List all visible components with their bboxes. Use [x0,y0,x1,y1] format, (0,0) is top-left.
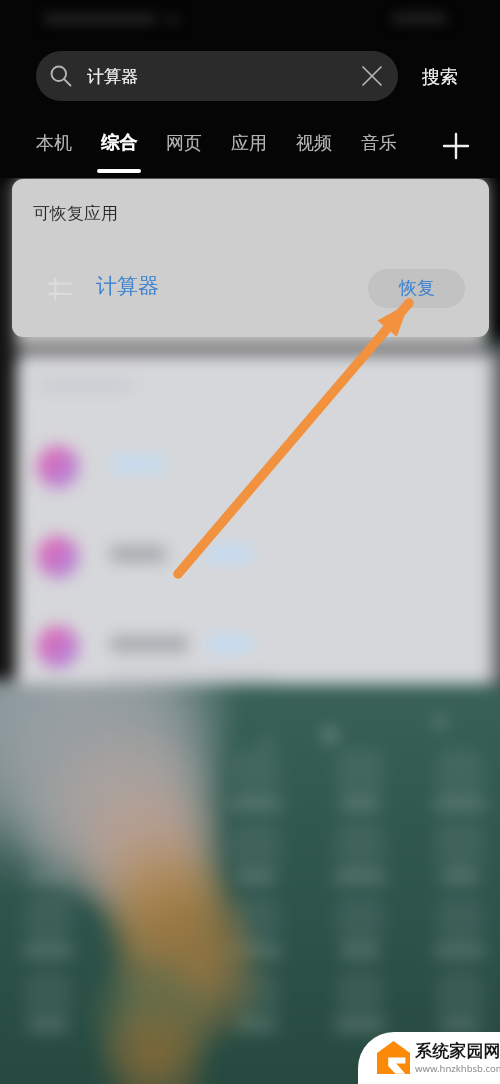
button[interactable]: 搜索 [414,59,466,96]
staticText: www.hnzkhbsb.com [415,1062,500,1075]
button[interactable]: 计算器 [12,255,489,323]
button[interactable]: 音乐 [352,124,406,178]
staticText: 综合 [101,132,137,155]
staticText: 系统家园网 [415,1041,500,1062]
staticText: 网页 [166,132,202,155]
staticText: 恢复 [399,277,435,300]
button[interactable]: 综合 [92,124,146,178]
staticText: 可恢复应用 [33,203,118,224]
button[interactable]: 网页 [157,124,211,178]
staticText: 音乐 [361,132,397,155]
staticText: 应用 [231,132,267,155]
staticText: 视频 [296,132,332,155]
button[interactable]: Clear query [352,56,392,96]
staticText: 计算器 [96,273,159,299]
button[interactable]: 视频 [287,124,341,178]
button[interactable]: 应用 [222,124,276,178]
staticText: 本机 [36,132,72,155]
button[interactable]: 计算器 [36,51,398,101]
staticText: 搜索 [422,66,458,89]
button[interactable]: 恢复 [368,269,465,308]
button[interactable]: Add tab [436,126,476,166]
button[interactable]: 本机 [27,124,81,178]
staticText: 计算器 [87,66,138,87]
